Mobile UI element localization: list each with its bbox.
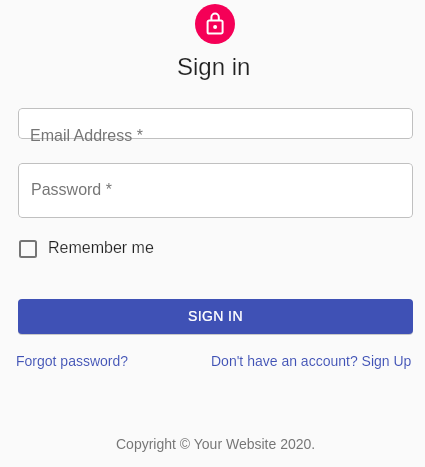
staticText: Don't have an account? Sign Up bbox=[211, 353, 412, 369]
staticText: Copyright © Your Website 2020. bbox=[116, 436, 316, 452]
button[interactable]: Forgot password? bbox=[16, 353, 129, 369]
staticText: Password * bbox=[31, 181, 112, 199]
staticText: Sign in bbox=[177, 53, 251, 80]
button[interactable]: SIGN IN bbox=[18, 299, 413, 334]
staticText: Email Address * bbox=[30, 127, 143, 145]
button[interactable]: Don't have an account? Sign Up bbox=[0, 353, 412, 369]
staticText: SIGN IN bbox=[188, 308, 243, 324]
button[interactable] bbox=[18, 108, 413, 139]
staticText: Remember me bbox=[48, 239, 154, 257]
button[interactable]: Remember me bbox=[12, 233, 212, 265]
button[interactable]: Password * bbox=[18, 163, 413, 218]
staticText: Forgot password? bbox=[16, 353, 129, 369]
